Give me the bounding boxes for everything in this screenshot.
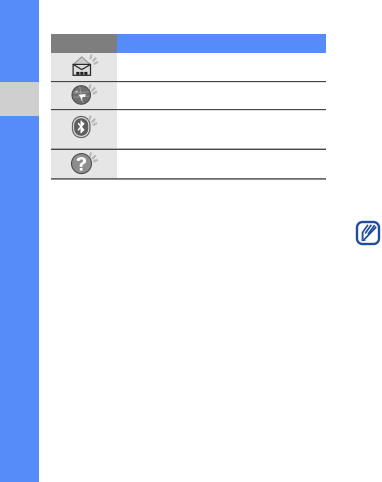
- button[interactable]: Note: [357, 222, 379, 244]
- button[interactable]: Messaging: [51, 53, 326, 81]
- button[interactable]: Help: [51, 150, 326, 178]
- button[interactable]: Web and network: [51, 82, 326, 109]
- button[interactable]: Bluetooth: [51, 110, 326, 149]
